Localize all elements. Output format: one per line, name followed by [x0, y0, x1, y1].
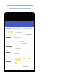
- button[interactable]: [15, 58, 21, 61]
- button[interactable]: [8, 31, 13, 33]
